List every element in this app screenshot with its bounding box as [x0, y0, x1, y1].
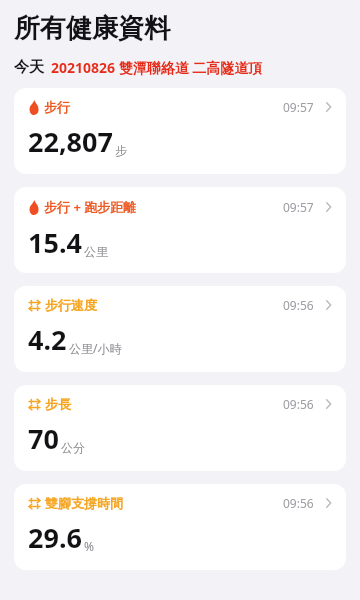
button[interactable]: 步行 + 跑步距離 [14, 187, 346, 273]
staticText: 今天 [14, 58, 44, 77]
staticText: 公分 [61, 440, 85, 455]
staticText: 09:56 [283, 495, 314, 511]
staticText: 29.6 [28, 519, 82, 556]
button[interactable]: 步行速度 [14, 286, 346, 372]
staticText: % [84, 538, 94, 554]
staticText: 22,807 [28, 123, 113, 160]
button[interactable]: 步長 [14, 385, 346, 471]
staticText: 20210826 雙潭聯絡道 二高隧道頂 [51, 58, 263, 77]
staticText: 09:57 [283, 199, 314, 215]
staticText: 70 [28, 420, 59, 457]
staticText: 步行 [44, 99, 70, 115]
staticText: 09:56 [283, 297, 314, 313]
staticText: 步行 + 跑步距離 [44, 198, 137, 216]
staticText: 步 [115, 143, 127, 158]
staticText: 15.4 [28, 224, 82, 261]
staticText: 公里/小時 [69, 340, 122, 356]
button[interactable]: 雙腳支撐時間 [14, 484, 346, 570]
staticText: 所有健康資料 [14, 12, 170, 45]
staticText: 4.2 [28, 321, 67, 358]
staticText: 步長 [45, 396, 71, 412]
staticText: 公里 [84, 244, 108, 259]
staticText: 步行速度 [45, 297, 97, 313]
staticText: 09:57 [283, 99, 314, 115]
staticText: 雙腳支撐時間 [45, 495, 123, 511]
button[interactable]: 步行 [14, 88, 346, 174]
staticText: 09:56 [283, 396, 314, 412]
